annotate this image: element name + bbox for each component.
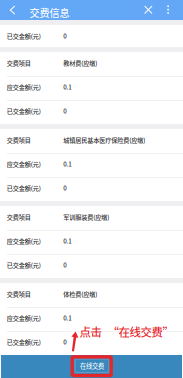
staticText: 0 xyxy=(63,260,66,269)
button[interactable]: Back xyxy=(0,0,22,20)
button[interactable]: 已交金额(元) xyxy=(0,331,183,355)
button[interactable]: 已交金额(元) xyxy=(0,25,183,49)
staticText: 应交金额(元) xyxy=(7,313,41,322)
staticText: 0.1 xyxy=(63,236,71,245)
staticText: 已交金额(元) xyxy=(7,183,41,192)
staticText: 已交金额(元) xyxy=(7,260,41,269)
staticText: 应交金额(元) xyxy=(7,82,41,91)
button[interactable]: 交费项目 xyxy=(0,52,183,76)
staticText: 0.1 xyxy=(63,82,71,91)
staticText: 0.1 xyxy=(63,313,71,322)
button[interactable]: 交费项目 xyxy=(0,206,183,230)
button[interactable]: 在线交费 xyxy=(75,359,109,372)
staticText: 0 xyxy=(63,337,66,346)
staticText: 0 xyxy=(63,106,66,115)
staticText: 已交金额(元) xyxy=(7,31,41,40)
staticText: 点击 “在线交费” xyxy=(79,323,173,340)
button[interactable]: 应交金额(元) xyxy=(0,153,183,177)
staticText: 已交金额(元) xyxy=(7,337,41,346)
staticText: 交费项目 xyxy=(7,212,31,221)
button[interactable]: 已交金额(元) xyxy=(0,254,183,278)
staticText: 应交金额(元) xyxy=(7,236,41,245)
staticText: 在线交费 xyxy=(80,361,104,370)
staticText: 体检费(应缴) xyxy=(63,289,97,298)
button[interactable]: 交费项目 xyxy=(0,129,183,153)
button[interactable]: More options xyxy=(160,0,178,20)
staticText: 已交金额(元) xyxy=(7,106,41,115)
staticText: 交费项目 xyxy=(7,58,31,67)
button[interactable]: Close xyxy=(139,0,160,20)
button[interactable]: 应交金额(元) xyxy=(0,76,183,100)
button[interactable]: 应交金额(元) xyxy=(0,307,183,331)
staticText: 城镇居民基本医疗保险费(应缴) xyxy=(63,135,145,144)
staticText: 交费项目 xyxy=(7,135,31,144)
staticText: 0 xyxy=(63,31,66,40)
staticText: 军训服装费(应缴) xyxy=(63,212,109,221)
staticText: 0.1 xyxy=(63,159,71,168)
button[interactable]: 交费项目 xyxy=(0,283,183,307)
staticText: 交费信息 xyxy=(29,5,69,20)
staticText: 0 xyxy=(63,183,66,192)
button[interactable]: 已交金额(元) xyxy=(0,177,183,201)
button[interactable]: 应交金额(元) xyxy=(0,230,183,254)
staticText: 教材费(应缴) xyxy=(63,58,97,67)
staticText: 应交金额(元) xyxy=(7,159,41,168)
button[interactable]: 已交金额(元) xyxy=(0,100,183,124)
staticText: 交费项目 xyxy=(7,289,31,298)
